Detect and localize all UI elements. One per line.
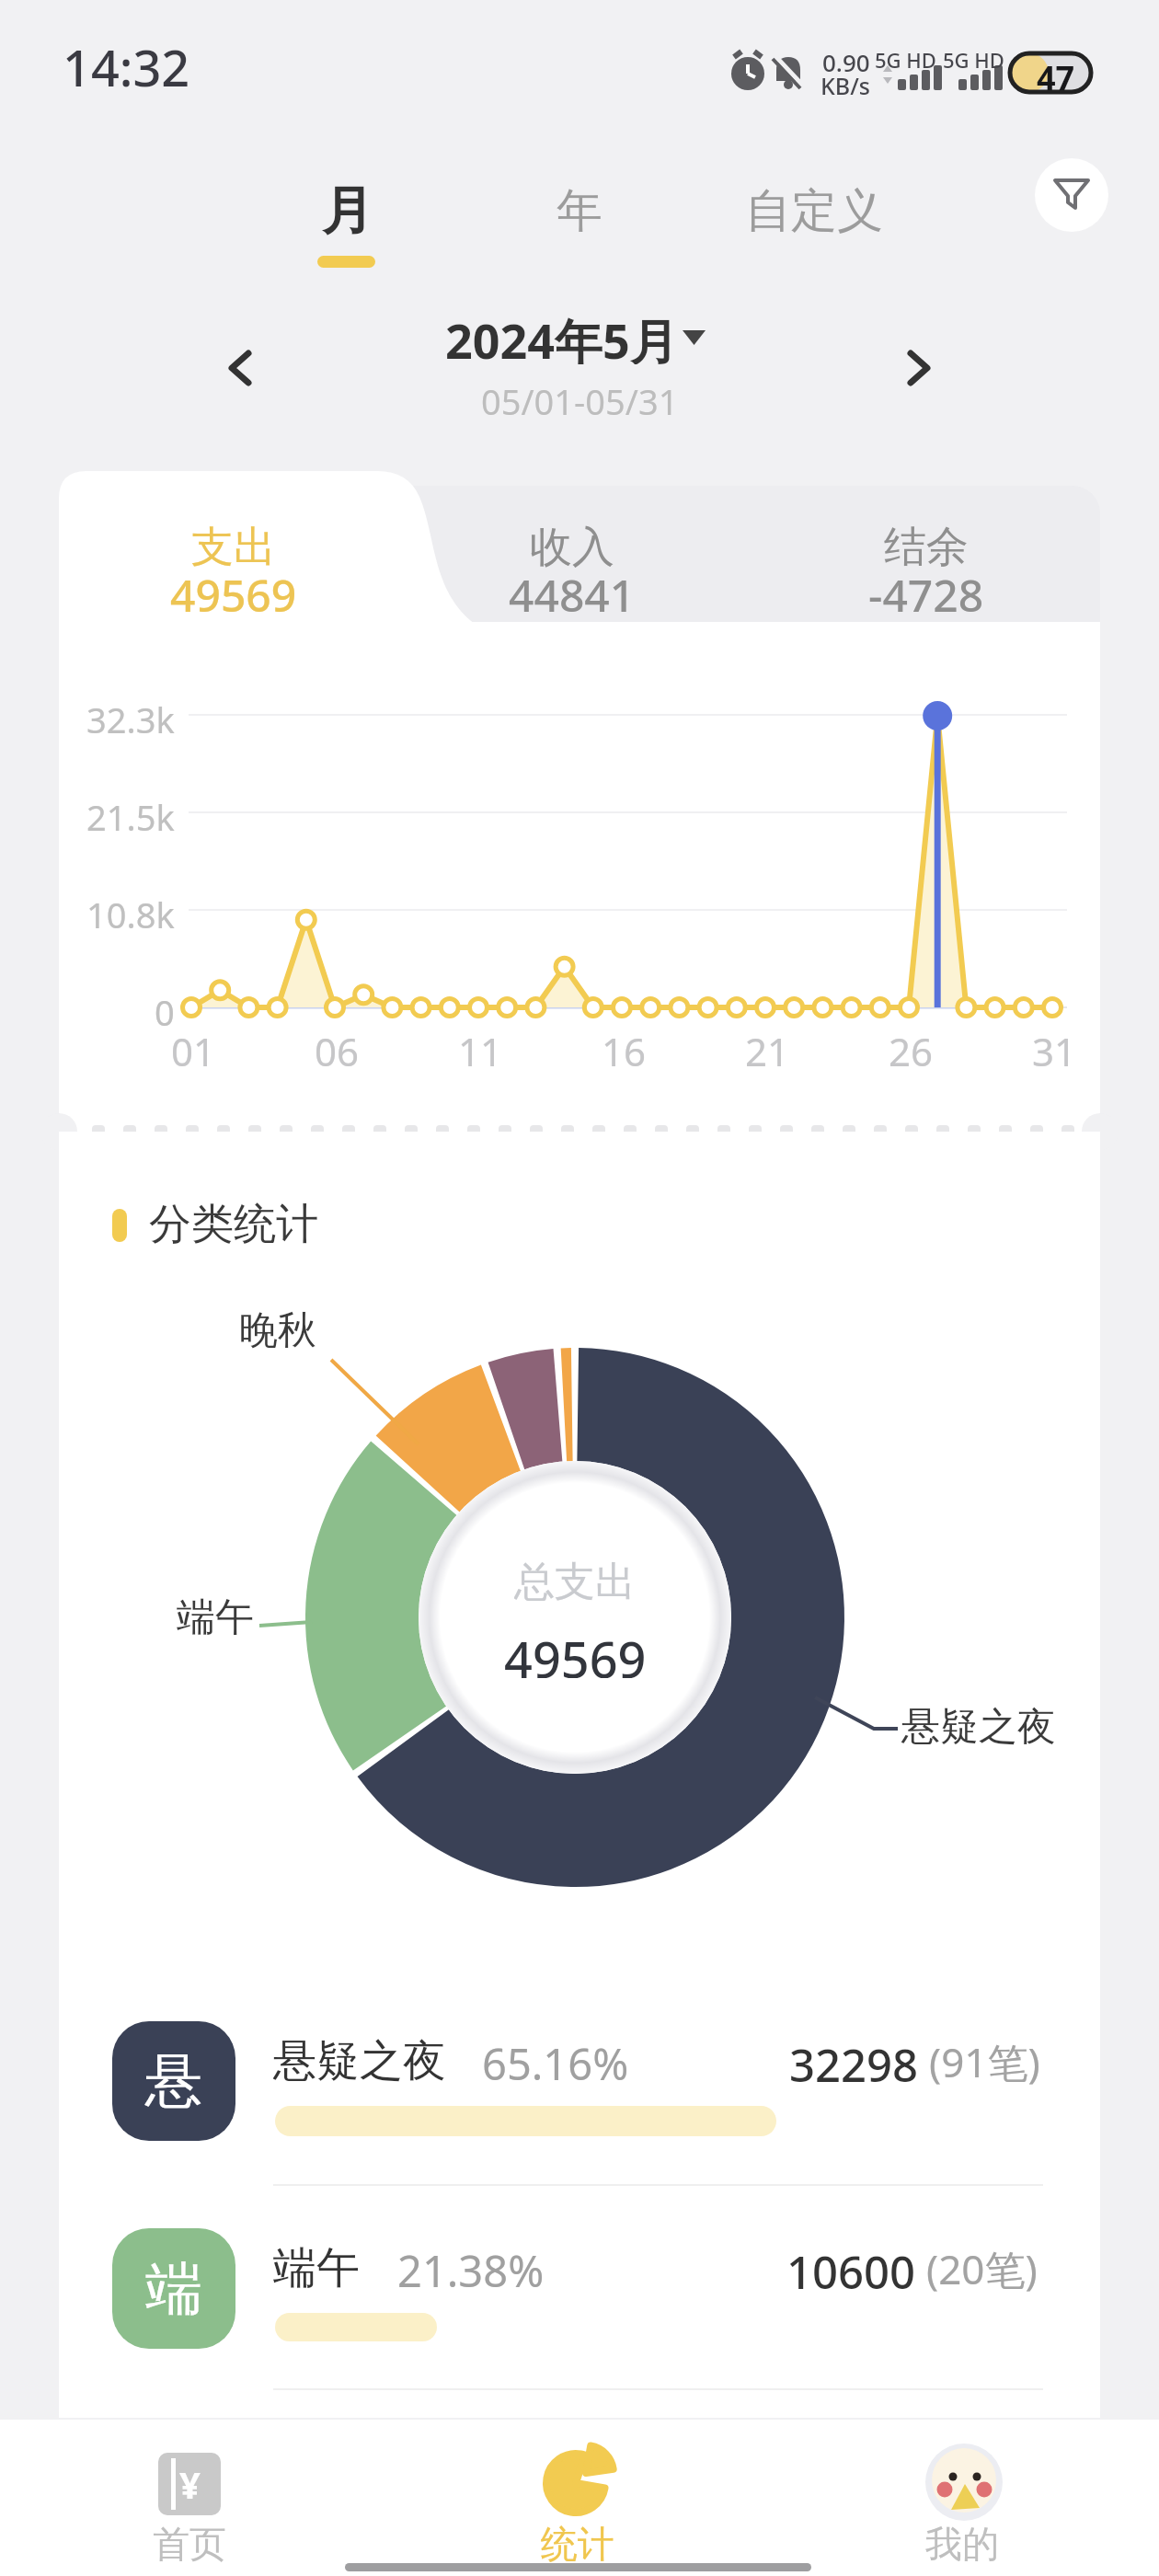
staticText: 支出	[191, 521, 276, 569]
staticText: 26	[889, 1025, 934, 1067]
button[interactable]: 收入	[443, 521, 701, 569]
button[interactable]: 年	[529, 182, 630, 236]
staticText: (20笔)	[926, 2241, 1038, 2293]
staticText: 结余	[884, 521, 969, 569]
button[interactable]: 支出	[105, 521, 362, 569]
staticText: (91笔)	[929, 2034, 1040, 2086]
staticText: KB/s	[820, 70, 870, 96]
button[interactable]: 月	[304, 178, 391, 239]
staticText: 47	[1037, 55, 1075, 90]
staticText: 21	[745, 1025, 790, 1067]
staticText: 65.16%	[482, 2034, 629, 2086]
staticText: 5G HD	[943, 46, 1004, 74]
staticText: 2024年5月	[445, 307, 678, 364]
staticText: 悬疑之夜	[901, 1703, 1056, 1747]
staticText: 0	[155, 988, 175, 1027]
staticText: 收入	[530, 521, 614, 569]
button[interactable]: 自定义	[731, 182, 897, 236]
button[interactable]	[486, 2429, 670, 2567]
staticText: 44841	[509, 565, 636, 615]
staticText: 5G HD	[875, 46, 936, 74]
staticText: 分类统计	[149, 1198, 318, 1251]
staticText: 端	[145, 2253, 202, 2325]
button[interactable]	[1035, 158, 1108, 232]
staticText: 32.3k	[86, 696, 175, 734]
button[interactable]	[98, 2429, 281, 2567]
staticText: 05/01-05/31	[481, 377, 679, 416]
staticText: 49569	[170, 565, 297, 615]
staticText: 月	[322, 178, 373, 239]
staticText: ¥	[179, 2459, 201, 2509]
staticText: 端午	[177, 1593, 254, 1638]
staticText: 32298	[789, 2034, 919, 2086]
staticText: 21.5k	[86, 793, 175, 832]
staticText: 49569	[504, 1625, 647, 1678]
staticText: 01	[171, 1025, 216, 1067]
staticText: 晚秋	[239, 1306, 316, 1351]
staticText: 年	[557, 182, 602, 236]
staticText: 总支出	[514, 1557, 636, 1601]
button[interactable]: 结余	[798, 521, 1055, 569]
button[interactable]	[414, 304, 727, 414]
button[interactable]	[112, 2021, 1045, 2141]
staticText: 10.8k	[86, 891, 175, 929]
staticText: 我的	[925, 2521, 999, 2565]
staticText: 首页	[153, 2521, 226, 2565]
staticText: 16	[602, 1025, 647, 1067]
staticText: -4728	[868, 565, 984, 615]
staticText: 21.38%	[397, 2241, 545, 2293]
button[interactable]	[112, 2228, 1045, 2349]
staticText: 悬疑之夜	[273, 2034, 446, 2086]
staticText: 31	[1032, 1025, 1077, 1067]
staticText: 14:32	[63, 33, 190, 94]
staticText: 统计	[541, 2521, 614, 2565]
staticText: 0.90	[822, 46, 870, 72]
button[interactable]	[874, 322, 966, 414]
button[interactable]	[193, 322, 285, 414]
staticText: 10600	[786, 2241, 916, 2293]
staticText: 端午	[273, 2241, 360, 2293]
staticText: 自定义	[745, 182, 883, 236]
button[interactable]	[870, 2429, 1054, 2567]
staticText: 11	[458, 1025, 503, 1067]
staticText: 悬	[145, 2045, 202, 2117]
staticText: 06	[315, 1025, 360, 1067]
